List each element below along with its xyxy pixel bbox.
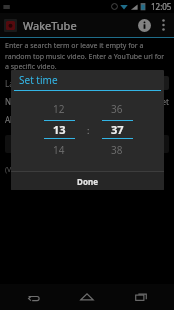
button[interactable]: App icon, up [4,19,17,32]
button[interactable]: Help [141,76,169,90]
staticText: 38 [111,143,123,157]
staticText: Set time [19,73,58,87]
staticText: (Volume) [5,165,35,175]
button[interactable]: Decrement [95,142,139,158]
button[interactable]: Recent apps [128,284,154,310]
staticText: Lady Gaga [5,78,45,89]
staticText: 14 [53,143,65,157]
staticText: WakeTube [23,18,77,33]
staticText: : [87,124,90,136]
staticText: 13 [53,122,66,137]
button[interactable]: 13 [37,121,81,138]
staticText: 12 [53,102,65,116]
staticText: Done [77,176,98,187]
button[interactable]: Home [74,284,100,310]
staticText: Next alarm [5,96,47,107]
button[interactable] [5,135,169,153]
staticText: 12:05 [151,1,172,12]
button[interactable]: 37 [95,121,139,138]
button[interactable]: More options [156,14,170,36]
button[interactable]: Increment [95,101,139,117]
button[interactable]: Done [11,172,164,190]
staticText: Alarm volume [5,114,58,125]
button[interactable]: About [134,15,154,35]
staticText: Enter a search term or leave it empty fo… [5,41,169,71]
staticText: 37 [111,122,124,137]
button[interactable]: Back [20,284,46,310]
button[interactable]: Increment [37,101,81,117]
staticText: Set [157,96,169,107]
staticText: 36 [111,102,123,116]
button[interactable]: Decrement [37,142,81,158]
